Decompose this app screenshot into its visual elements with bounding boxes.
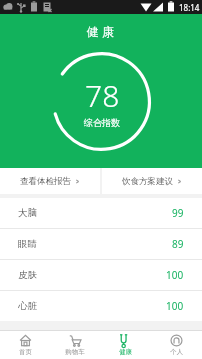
button[interactable]: 购物车: [50, 331, 100, 359]
staticText: 健 康: [87, 23, 115, 39]
staticText: 心脏: [18, 300, 37, 312]
button[interactable]: 查看体检报告: [0, 168, 100, 194]
staticText: 大脑: [18, 207, 37, 219]
button[interactable]: 健康: [100, 331, 151, 359]
button[interactable]: 皮肤: [0, 260, 202, 290]
staticText: 89: [172, 237, 184, 251]
button[interactable]: 大脑: [0, 198, 202, 228]
button[interactable]: 首页: [0, 331, 50, 359]
staticText: 健康: [119, 348, 132, 356]
button[interactable]: 心脏: [0, 291, 202, 321]
staticText: 购物车: [65, 348, 85, 356]
staticText: 综合指数: [84, 117, 120, 128]
staticText: 99: [172, 206, 184, 220]
staticText: 眼睛: [18, 238, 37, 250]
staticText: 皮肤: [18, 269, 37, 281]
staticText: 100: [166, 268, 184, 282]
button[interactable]: 眼睛: [0, 229, 202, 259]
staticText: 100: [166, 299, 184, 313]
button[interactable]: 个人: [151, 331, 202, 359]
staticText: 饮食方案建议: [122, 176, 173, 187]
staticText: 18:14: [179, 2, 200, 13]
staticText: 个人: [170, 348, 183, 356]
staticText: 查看体检报告: [20, 176, 71, 187]
staticText: 首页: [19, 348, 32, 356]
button[interactable]: 饮食方案建议: [102, 168, 202, 194]
staticText: 78: [85, 75, 120, 116]
